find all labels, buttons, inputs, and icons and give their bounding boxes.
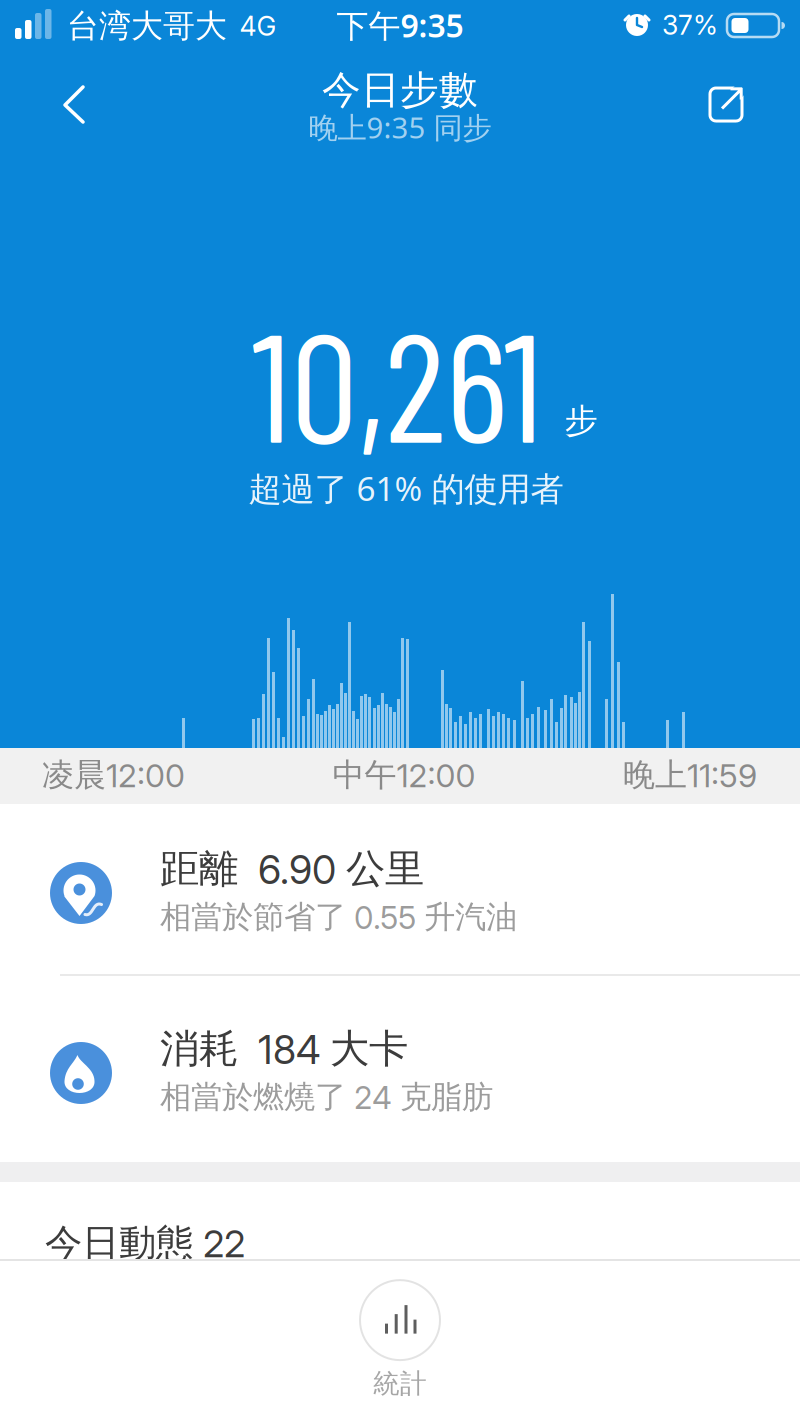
staticText: 步 <box>564 400 597 441</box>
staticText: 今日動態 22 <box>45 1219 245 1266</box>
staticText: 相當於節省了 0.55 升汽油 <box>160 897 517 937</box>
button[interactable] <box>44 74 104 134</box>
staticText: 超過了 61% 的使用者 <box>248 466 563 510</box>
button[interactable] <box>696 75 756 135</box>
staticText: 統計 <box>373 1367 427 1400</box>
staticText: 4G <box>239 10 276 42</box>
staticText: 晚上11:59 <box>623 755 757 795</box>
staticText: 相當於燃燒了 24 克脂肪 <box>160 1077 493 1117</box>
staticText: 37% <box>662 9 718 41</box>
staticText: 凌晨12:00 <box>42 755 185 795</box>
staticText: 10,261 <box>251 291 542 473</box>
staticText: 中午12:00 <box>332 755 475 795</box>
staticText: 晚上9:35 同步 <box>308 107 491 146</box>
button[interactable]: 統計 <box>360 1280 440 1400</box>
staticText: 消耗 184 大卡 <box>160 1024 408 1074</box>
staticText: 台湾大哥大 <box>67 6 227 46</box>
staticText: 今日步數 <box>322 66 478 114</box>
staticText: 下午9:35 <box>336 4 463 46</box>
staticText: 距離 6.90 公里 <box>160 844 424 894</box>
